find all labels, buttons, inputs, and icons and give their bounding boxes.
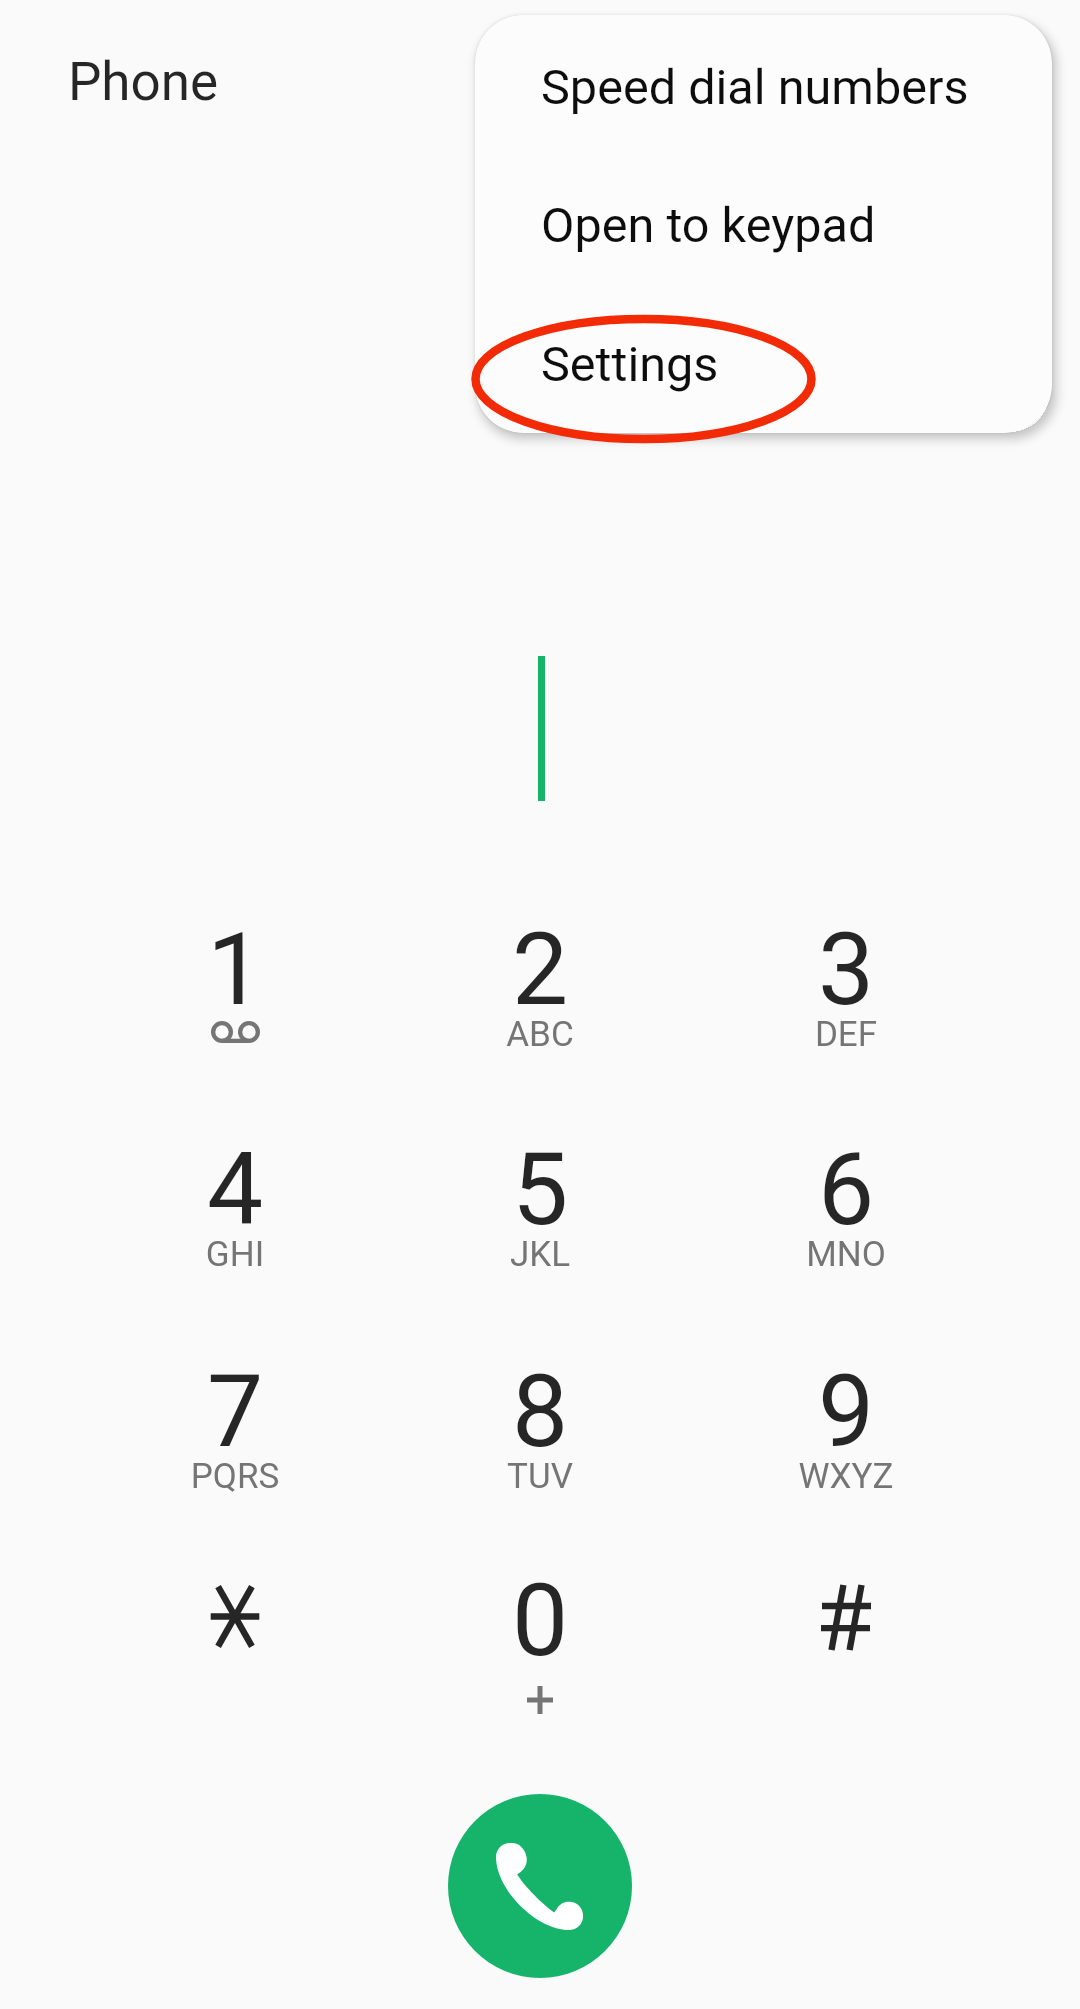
staticText: WXYZ <box>696 1456 996 1497</box>
staticText: ABC <box>390 1014 690 1055</box>
button[interactable] <box>125 893 345 1083</box>
staticText: 1 <box>85 911 385 1028</box>
staticText: 5 <box>390 1131 690 1248</box>
button[interactable]: Pound <box>736 1544 956 1734</box>
button[interactable]: Star <box>125 1544 345 1734</box>
staticText: 6 <box>696 1131 996 1248</box>
staticText: 2 <box>390 911 690 1028</box>
staticText: 7 <box>85 1353 385 1470</box>
button[interactable] <box>125 1335 345 1525</box>
button[interactable] <box>736 893 956 1083</box>
button[interactable]: Call <box>448 1794 632 1978</box>
button[interactable]: Settings <box>475 292 1052 430</box>
button[interactable] <box>736 1335 956 1525</box>
staticText: PQRS <box>85 1456 385 1497</box>
staticText: GHI <box>85 1234 385 1275</box>
staticText: 3 <box>696 911 996 1028</box>
staticText: 9 <box>696 1353 996 1470</box>
staticText: Speed dial numbers <box>541 59 969 116</box>
staticText: 0 <box>390 1562 690 1679</box>
button[interactable]: Open to keypad <box>475 153 1052 291</box>
staticText: Open to keypad <box>541 197 876 254</box>
button[interactable] <box>736 1113 956 1303</box>
button[interactable] <box>125 1113 345 1303</box>
button[interactable] <box>430 893 650 1083</box>
staticText: Settings <box>541 336 719 393</box>
staticText: MNO <box>696 1234 996 1275</box>
staticText: TUV <box>390 1456 690 1497</box>
staticText: 4 <box>85 1131 385 1248</box>
staticText: JKL <box>390 1234 690 1275</box>
staticText: DEF <box>696 1014 996 1055</box>
button[interactable] <box>430 1113 650 1303</box>
staticText: 8 <box>390 1353 690 1470</box>
button[interactable] <box>430 1335 650 1525</box>
button[interactable] <box>430 1544 650 1734</box>
staticText: Phone <box>0 51 293 113</box>
button[interactable]: Speed dial numbers <box>475 15 1052 153</box>
